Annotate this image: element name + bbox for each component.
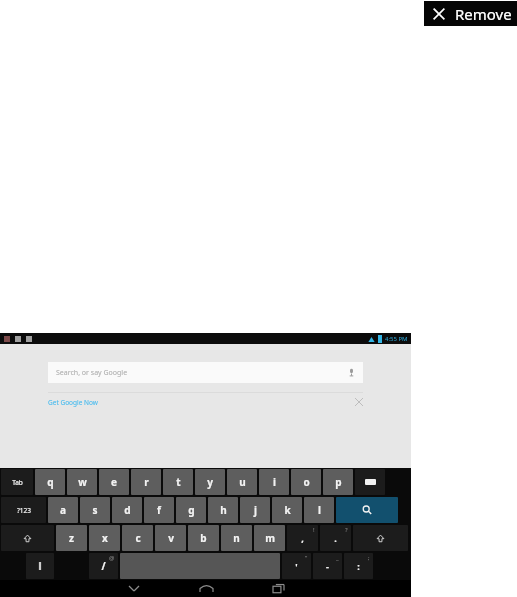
- staticText: _: [336, 554, 339, 562]
- button[interactable]: ,: [287, 525, 318, 551]
- staticText: j: [254, 503, 257, 517]
- staticText: b: [200, 531, 207, 545]
- button[interactable]: p: [323, 469, 353, 495]
- button[interactable]: Backspace: [355, 469, 385, 495]
- button[interactable]: Search, or say Google: [48, 362, 363, 383]
- staticText: a: [60, 503, 66, 517]
- staticText: u: [239, 475, 246, 489]
- other: Remove: [431, 6, 447, 22]
- staticText: ': [295, 560, 298, 572]
- button[interactable]: u: [227, 469, 257, 495]
- staticText: Remove: [455, 4, 512, 24]
- staticText: q: [47, 475, 54, 489]
- staticText: /: [101, 559, 106, 573]
- button[interactable]: Shift: [353, 525, 408, 551]
- button[interactable]: Get Google Now: [48, 393, 363, 411]
- button[interactable]: ?123: [1, 497, 46, 523]
- button[interactable]: Recents: [255, 580, 301, 597]
- button[interactable]: x: [89, 525, 120, 551]
- staticText: Search, or say Google: [56, 368, 128, 378]
- staticText: ?: [345, 526, 348, 534]
- staticText: i: [273, 475, 276, 489]
- staticText: -: [326, 560, 329, 572]
- button[interactable]: d: [112, 497, 142, 523]
- staticText: e: [111, 475, 117, 489]
- staticText: f: [157, 503, 161, 517]
- staticText: ,: [301, 532, 304, 544]
- staticText: d: [124, 503, 131, 517]
- button[interactable]: w: [67, 469, 97, 495]
- other: Dismiss: [355, 398, 363, 406]
- button[interactable]: Input method: [26, 553, 54, 579]
- button[interactable]: /: [89, 553, 118, 579]
- other: Voice search: [347, 368, 356, 377]
- staticText: r: [144, 475, 149, 489]
- button[interactable]: Back: [111, 580, 157, 597]
- button[interactable]: f: [144, 497, 174, 523]
- staticText: 4:55 PM: [385, 335, 408, 343]
- staticText: ": [305, 554, 308, 562]
- button[interactable]: Tab: [1, 469, 33, 495]
- button[interactable]: h: [208, 497, 238, 523]
- staticText: n: [233, 531, 240, 545]
- staticText: y: [207, 475, 213, 489]
- button[interactable]: c: [122, 525, 153, 551]
- staticText: t: [176, 475, 181, 489]
- button[interactable]: k: [272, 497, 302, 523]
- button[interactable]: j: [240, 497, 270, 523]
- staticText: m: [265, 531, 275, 545]
- button[interactable]: t: [163, 469, 193, 495]
- staticText: ;: [368, 554, 370, 562]
- staticText: x: [102, 531, 108, 545]
- staticText: :: [357, 560, 360, 572]
- button[interactable]: .: [320, 525, 351, 551]
- staticText: v: [168, 531, 174, 545]
- button[interactable]: Shift: [1, 525, 54, 551]
- staticText: w: [78, 475, 87, 489]
- button[interactable]: b: [188, 525, 219, 551]
- button[interactable]: i: [259, 469, 289, 495]
- staticText: .: [334, 532, 337, 544]
- button[interactable]: Remove: [424, 1, 517, 26]
- staticText: h: [220, 503, 227, 517]
- button[interactable]: o: [291, 469, 321, 495]
- button[interactable]: :: [344, 553, 373, 579]
- button[interactable]: e: [99, 469, 129, 495]
- button[interactable]: Search: [336, 497, 398, 523]
- button[interactable]: -: [313, 553, 342, 579]
- button[interactable]: a: [48, 497, 78, 523]
- button[interactable]: r: [131, 469, 161, 495]
- staticText: Get Google Now: [48, 398, 98, 407]
- staticText: k: [284, 503, 291, 517]
- staticText: l: [318, 503, 321, 517]
- button[interactable]: z: [56, 525, 87, 551]
- button[interactable]: n: [221, 525, 252, 551]
- button[interactable]: ': [282, 553, 311, 579]
- staticText: Tab: [12, 478, 23, 487]
- staticText: @: [109, 554, 115, 562]
- staticText: g: [188, 503, 195, 517]
- staticText: !: [313, 526, 315, 534]
- button[interactable]: l: [304, 497, 334, 523]
- button[interactable]: y: [195, 469, 225, 495]
- staticText: s: [92, 503, 98, 517]
- button[interactable]: q: [35, 469, 65, 495]
- staticText: z: [69, 531, 74, 545]
- staticText: ?123: [17, 506, 31, 515]
- staticText: p: [335, 475, 342, 489]
- button[interactable]: s: [80, 497, 110, 523]
- staticText: c: [135, 531, 141, 545]
- staticText: o: [303, 475, 310, 489]
- button[interactable]: v: [155, 525, 186, 551]
- button[interactable]: Home: [183, 580, 229, 597]
- button[interactable]: m: [254, 525, 285, 551]
- button[interactable]: g: [176, 497, 206, 523]
